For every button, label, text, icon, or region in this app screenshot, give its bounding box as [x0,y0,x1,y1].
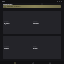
button[interactable]: Profile [47,61,52,64]
staticText: Week [33,20,38,22]
button[interactable]: Home [12,61,17,64]
staticText: 46.2k [33,22,39,25]
staticText: 72m [4,47,9,50]
button[interactable]: Streak 12 days [3,5,61,8]
staticText: Active [4,45,9,47]
staticText: Streak 12 days [7,5,21,8]
staticText: Summary [3,3,13,5]
staticText: 84% [33,47,38,50]
button[interactable]: Today [3,11,32,34]
button[interactable]: Active [3,36,32,59]
button[interactable]: Goal [32,36,61,59]
staticText: Today [4,20,9,22]
staticText: Goal [33,45,37,47]
staticText: 8,421 [4,22,10,25]
button[interactable]: Stats [30,61,35,64]
button[interactable]: Week [32,11,61,34]
